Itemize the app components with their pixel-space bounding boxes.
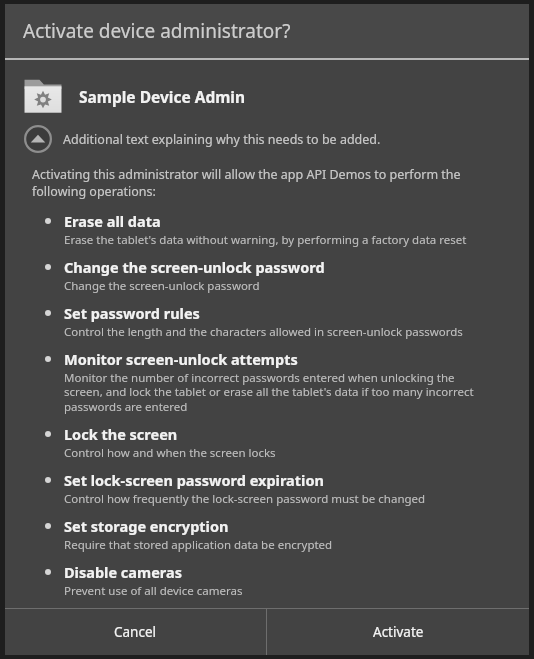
staticText: Activating this administrator will allow… xyxy=(32,166,474,199)
staticText: Monitor the number of incorrect password… xyxy=(64,370,495,415)
staticText: Require that stored application data be … xyxy=(64,537,333,553)
staticText: Control how frequently the lock-screen p… xyxy=(64,491,426,507)
button[interactable]: Activate xyxy=(267,609,529,655)
staticText: Erase all data xyxy=(64,211,161,231)
staticText: Set password rules xyxy=(64,303,200,323)
staticText: Sample Device Admin xyxy=(79,86,246,107)
staticText: Cancel xyxy=(114,623,157,641)
staticText: Prevent use of all device cameras xyxy=(64,583,243,599)
staticText: Control the length and the characters al… xyxy=(64,324,463,340)
button[interactable]: Collapse explanation xyxy=(23,124,529,154)
staticText: Change the screen-unlock password xyxy=(64,278,260,294)
staticText: Activate xyxy=(373,623,424,641)
staticText: Set lock-screen password expiration xyxy=(64,470,324,490)
staticText: Monitor screen-unlock attempts xyxy=(64,349,298,369)
staticText: Disable cameras xyxy=(64,562,182,582)
staticText: Additional text explaining why this need… xyxy=(63,131,381,148)
staticText: Change the screen-unlock password xyxy=(64,257,325,277)
staticText: Control how and when the screen locks xyxy=(64,445,276,461)
button[interactable]: Collapse explanation xyxy=(23,124,53,154)
staticText: Lock the screen xyxy=(64,424,178,444)
staticText: Activate device administrator? xyxy=(23,18,291,44)
staticText: Set storage encryption xyxy=(64,516,229,536)
staticText: Erase the tablet's data without warning,… xyxy=(64,232,467,248)
button[interactable]: Cancel xyxy=(5,609,266,655)
